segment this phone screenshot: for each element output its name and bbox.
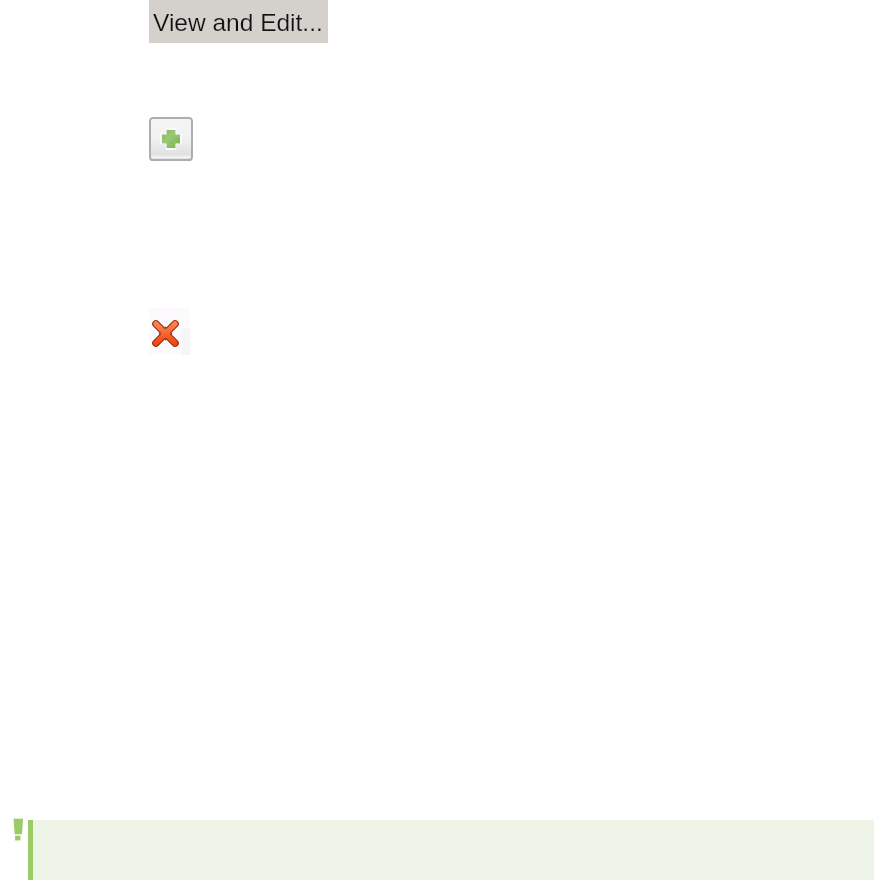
- button[interactable]: Delete: [149, 308, 190, 355]
- button[interactable]: View and Edit...: [149, 0, 328, 43]
- other: Information: [13, 818, 23, 842]
- button[interactable]: Add: [149, 117, 193, 161]
- staticText: View and Edit...: [153, 9, 323, 36]
